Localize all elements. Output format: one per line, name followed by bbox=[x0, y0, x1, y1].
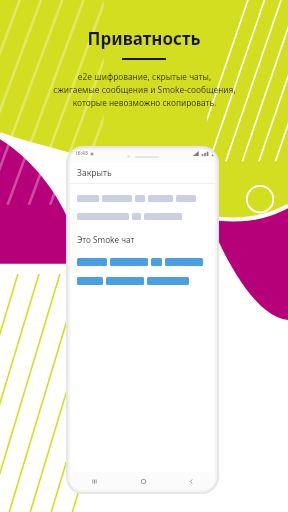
button[interactable]: Home bbox=[119, 472, 167, 490]
button[interactable]: Back bbox=[167, 472, 215, 490]
staticText: Приватность bbox=[87, 27, 201, 50]
staticText: 16:43 bbox=[75, 150, 88, 157]
staticText: e2e шифрование, скрытые чаты, сжигаемые … bbox=[53, 71, 236, 109]
button[interactable]: Закрыть bbox=[70, 163, 215, 183]
staticText: Закрыть bbox=[77, 167, 112, 179]
button[interactable]: Recent apps bbox=[70, 472, 119, 490]
staticText: Это Smoke чат bbox=[77, 234, 135, 245]
